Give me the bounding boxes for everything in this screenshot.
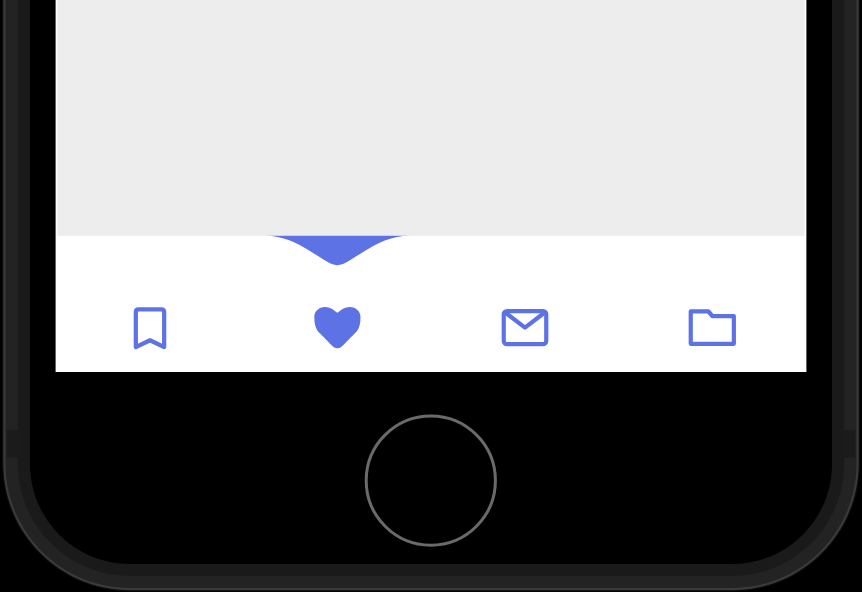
button[interactable]: Files bbox=[618, 236, 806, 372]
button[interactable]: Bookmarks bbox=[56, 236, 244, 372]
button[interactable]: Mail bbox=[431, 236, 619, 372]
button[interactable]: Favorites bbox=[244, 236, 432, 372]
